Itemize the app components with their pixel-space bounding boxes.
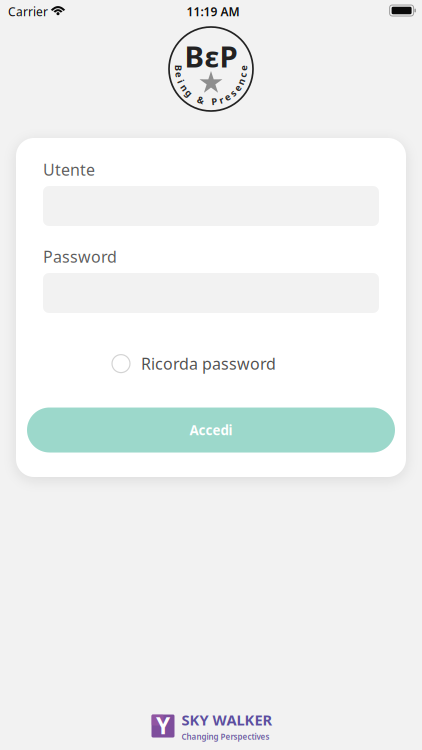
staticText: Utente: [43, 159, 95, 180]
staticText: Carrier: [8, 3, 48, 19]
staticText: &: [197, 94, 204, 106]
button[interactable]: Ricorda password: [112, 349, 276, 378]
staticText: e: [224, 91, 230, 103]
staticText: P: [211, 95, 217, 107]
staticText: s: [231, 87, 236, 99]
staticText: Ricorda password: [141, 353, 276, 374]
staticText: n: [181, 81, 187, 94]
button[interactable]: Accedi: [27, 407, 395, 452]
staticText: c: [240, 69, 245, 81]
staticText: n: [238, 75, 244, 88]
staticText: Changing Perspectives: [181, 731, 269, 742]
staticText: e: [240, 62, 246, 74]
staticText: B: [175, 62, 181, 74]
staticText: i: [179, 75, 182, 88]
staticText: Y: [156, 710, 170, 740]
staticText: BεP: [184, 36, 237, 75]
staticText: Password: [43, 246, 117, 267]
staticText: e: [235, 81, 241, 94]
staticText: 11:19 AM: [186, 3, 239, 19]
staticText: g: [186, 87, 192, 99]
staticText: r: [219, 94, 223, 106]
staticText: SKY WALKER: [181, 710, 272, 729]
staticText: e: [176, 69, 182, 81]
staticText: Accedi: [189, 421, 232, 439]
